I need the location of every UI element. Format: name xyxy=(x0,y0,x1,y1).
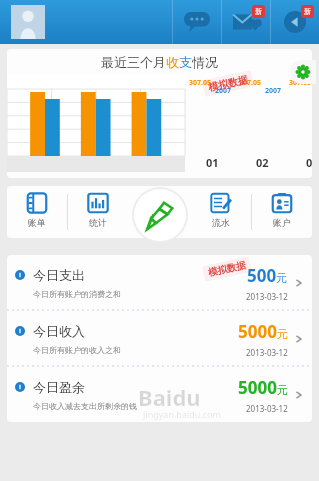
button[interactable]: Back xyxy=(271,0,319,44)
staticText: 新 xyxy=(304,7,311,16)
staticText: 模拟数据 xyxy=(207,259,247,279)
staticText: 模拟数据 xyxy=(207,73,249,94)
button[interactable]: 流水 xyxy=(191,186,251,238)
staticText: 2013-03-12 xyxy=(246,291,288,302)
staticText: 今日所有账户的收入之和 xyxy=(33,345,121,355)
button[interactable]: Profile xyxy=(11,5,45,39)
staticText: 307.05 xyxy=(189,78,211,88)
staticText: 今日收入减去支出所剩余的钱 xyxy=(33,401,137,411)
staticText: 2007 xyxy=(215,86,232,96)
staticText: 2007 xyxy=(265,86,282,96)
staticText: 500元 xyxy=(247,264,288,287)
button[interactable]: 今日盈余 xyxy=(7,367,312,422)
staticText: 账单 xyxy=(28,217,46,228)
staticText: 今日盈余 xyxy=(33,379,85,395)
button[interactable]: 今日收入 xyxy=(7,311,312,366)
staticText: 账户 xyxy=(273,217,291,228)
staticText: 最近三个月收支情况 xyxy=(101,54,218,70)
staticText: 今日所有账户的消费之和 xyxy=(33,289,121,299)
staticText: 新 xyxy=(255,7,262,16)
button[interactable]: New record xyxy=(134,189,186,241)
staticText: 今日收入 xyxy=(33,323,85,339)
staticText: 2013-03-12 xyxy=(246,347,288,358)
button[interactable]: 统计 xyxy=(68,186,128,238)
staticText: jingyan.baidu.com xyxy=(143,408,221,420)
staticText: 307.05 xyxy=(289,78,311,88)
staticText: 307.05 xyxy=(239,78,261,88)
staticText: Baidu xyxy=(138,382,201,412)
staticText: 流水 xyxy=(212,217,230,228)
button[interactable]: Settings xyxy=(290,60,316,84)
button[interactable]: 账户 xyxy=(252,186,312,238)
button[interactable]: Messages xyxy=(173,0,221,44)
staticText: 01 xyxy=(206,155,219,170)
staticText: 统计 xyxy=(89,217,107,228)
staticText: 5000元 xyxy=(238,320,288,343)
button[interactable]: 今日支出 xyxy=(7,255,312,310)
staticText: 03 xyxy=(306,155,312,170)
staticText: 今日支出 xyxy=(33,267,85,283)
button[interactable]: 账单 xyxy=(7,186,67,238)
staticText: 02 xyxy=(256,155,269,170)
staticText: 5000元 xyxy=(238,376,288,399)
button[interactable]: Mail xyxy=(222,0,270,44)
staticText: 2013-03-12 xyxy=(246,403,288,414)
